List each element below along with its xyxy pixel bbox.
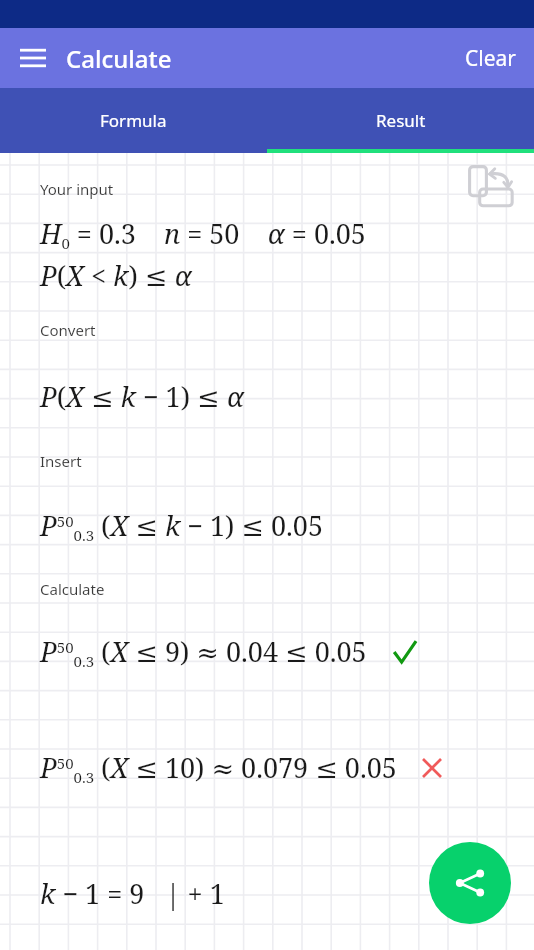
staticText: Result xyxy=(376,109,426,132)
staticText: Calculate xyxy=(40,579,105,599)
staticText: H0 = 0.3 n = 50 α = 0.05 xyxy=(40,215,366,253)
staticText: P500.3 (X ≤ k − 1) ≤ 0.05 xyxy=(40,507,324,545)
staticText: Formula xyxy=(100,109,167,132)
staticText: P500.3 (X ≤ 10) ≈ 0.079 ≤ 0.05 xyxy=(40,749,397,787)
button[interactable]: Rotate screen xyxy=(464,161,520,217)
staticText: P500.3 (X ≤ 9) ≈ 0.04 ≤ 0.05 xyxy=(40,633,367,671)
button[interactable]: Result xyxy=(267,88,534,153)
button[interactable]: Clear xyxy=(447,32,534,85)
staticText: Insert xyxy=(40,451,82,471)
staticText: Your input xyxy=(40,179,114,199)
staticText: P(X ≤ k − 1) ≤ α xyxy=(40,378,244,415)
staticText: Calculate xyxy=(66,42,172,75)
button[interactable]: Share xyxy=(429,842,511,924)
staticText: Convert xyxy=(40,320,96,340)
staticText: P(X < k) ≤ α xyxy=(40,257,192,294)
staticText: k − 1 = 9 | + 1 xyxy=(40,875,225,912)
button[interactable]: Open navigation menu xyxy=(8,33,58,83)
staticText: Clear xyxy=(465,44,516,73)
button[interactable]: Formula xyxy=(0,88,267,153)
